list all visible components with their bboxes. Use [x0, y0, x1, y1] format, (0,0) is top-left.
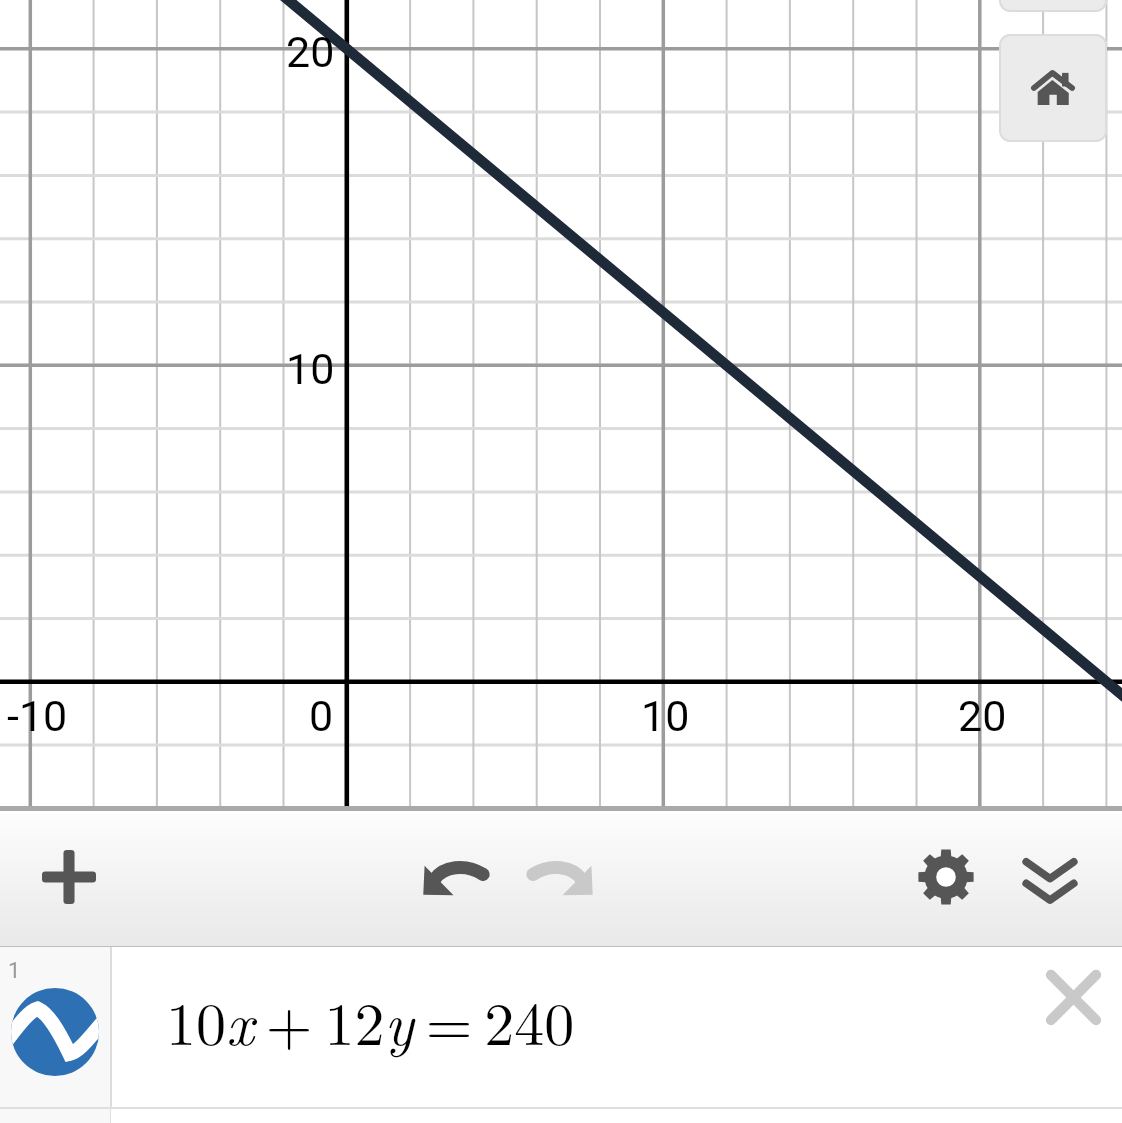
button[interactable]: Toggle graph visibility — [0, 947, 110, 1107]
staticText: 10x + 12y = 240 — [166, 977, 575, 1062]
staticText: 10 — [641, 691, 690, 741]
button[interactable]: Settings — [903, 834, 989, 920]
staticText: 20 — [286, 27, 335, 77]
staticText: 1 — [8, 958, 21, 984]
staticText: 10 — [286, 344, 335, 394]
button[interactable]: Add expression — [26, 834, 112, 920]
button[interactable]: Home — [999, 34, 1107, 142]
button[interactable]: Collapse expression list — [1007, 834, 1093, 920]
button[interactable]: Undo — [410, 834, 496, 920]
button[interactable]: Zoom in — [999, 0, 1107, 12]
button[interactable]: Delete expression — [1029, 953, 1117, 1041]
staticText: -10 — [7, 691, 68, 741]
button[interactable]: Redo — [519, 834, 605, 920]
staticText: 20 — [958, 691, 1007, 741]
staticText: 0 — [309, 691, 334, 741]
